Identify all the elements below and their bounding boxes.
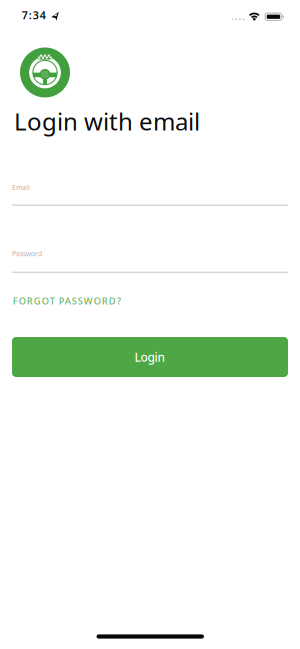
- staticText: Login with email: [14, 105, 200, 137]
- staticText: Email: [12, 183, 30, 192]
- staticText: 7 : 3 4: [22, 8, 46, 22]
- button[interactable]: Login: [12, 337, 288, 377]
- button[interactable]: FORGOT PASSWORD?: [13, 295, 121, 307]
- staticText: Password: [12, 249, 42, 258]
- button[interactable]: Email: [12, 183, 288, 205]
- staticText: Login: [134, 349, 165, 365]
- button[interactable]: Password: [12, 249, 288, 273]
- staticText: FORGOT PASSWORD?: [13, 295, 121, 307]
